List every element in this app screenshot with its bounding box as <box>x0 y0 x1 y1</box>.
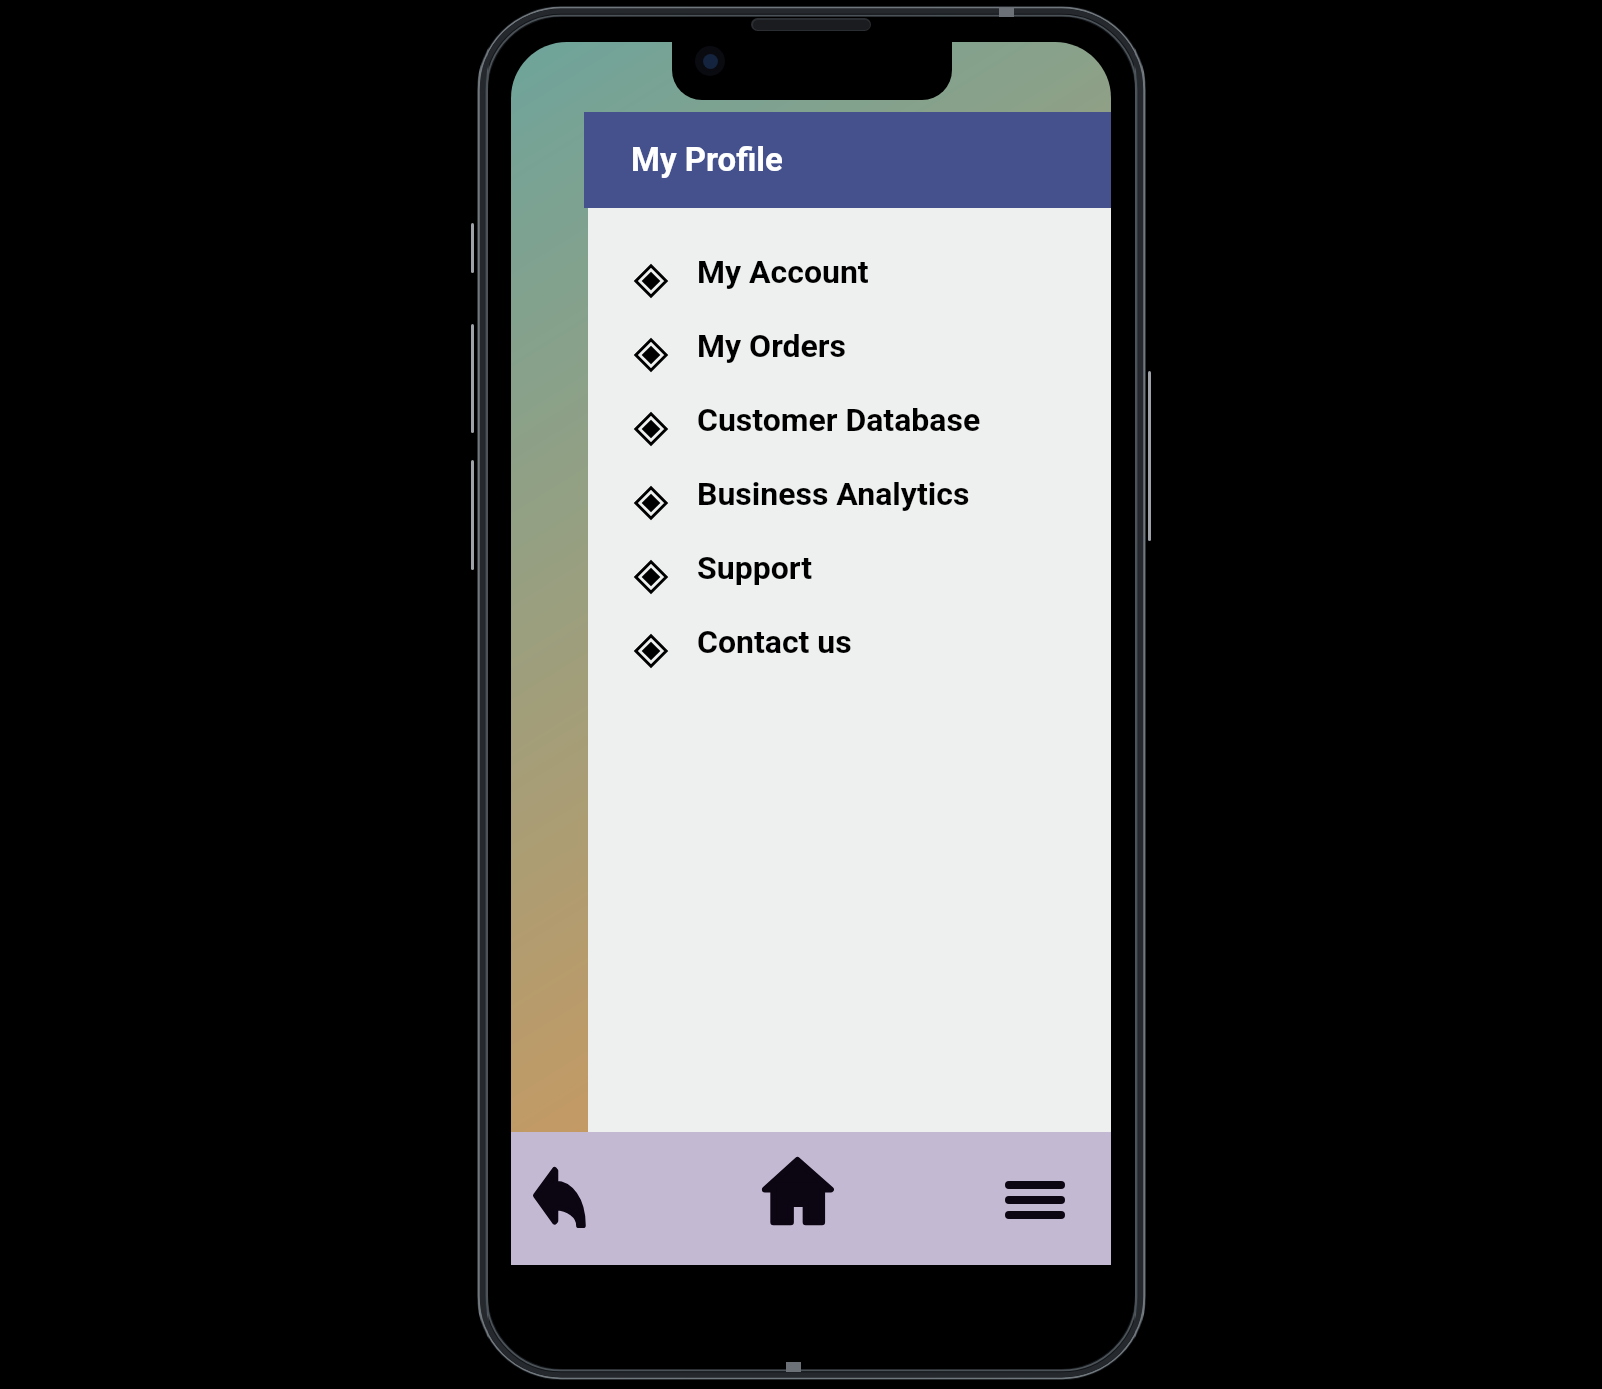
button[interactable]: Customer Database <box>633 383 1033 457</box>
staticText: Business Analytics <box>697 475 970 513</box>
staticText: Support <box>697 549 813 587</box>
staticText: Contact us <box>697 623 852 661</box>
button[interactable]: Back <box>516 1149 603 1245</box>
button[interactable]: My Account <box>633 235 1033 309</box>
staticText: Customer Database <box>697 401 981 439</box>
button[interactable]: Support <box>633 531 1033 605</box>
button[interactable]: Menu <box>987 1152 1083 1248</box>
staticText: My Orders <box>697 327 847 365</box>
staticText: My Profile <box>631 140 783 179</box>
button[interactable]: Home <box>750 1143 846 1239</box>
staticText: My Account <box>697 253 869 291</box>
button[interactable]: Business Analytics <box>633 457 1033 531</box>
button[interactable]: Contact us <box>633 605 1033 679</box>
button[interactable]: My Orders <box>633 309 1033 383</box>
